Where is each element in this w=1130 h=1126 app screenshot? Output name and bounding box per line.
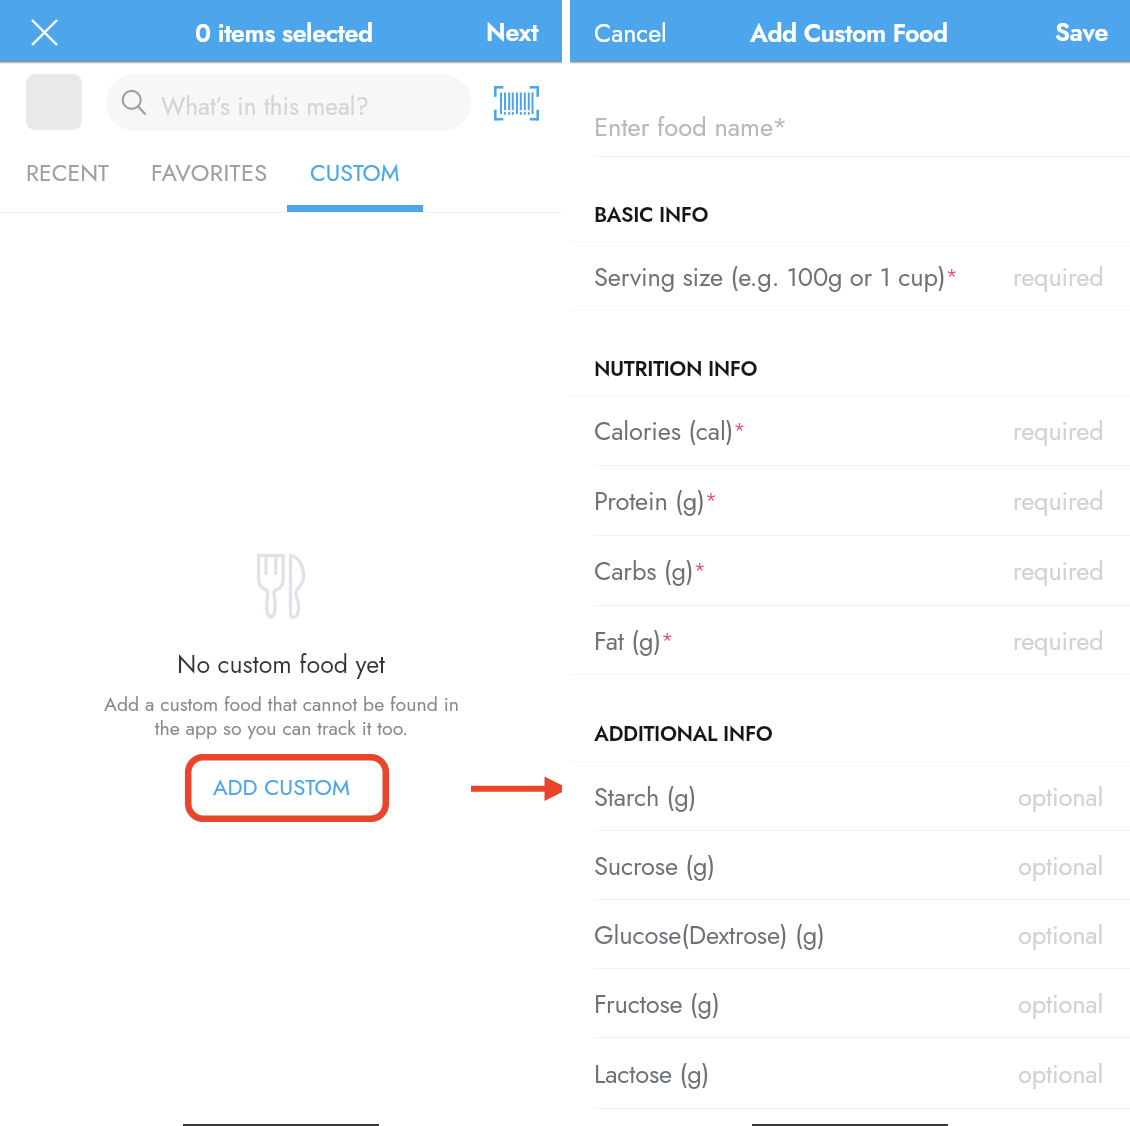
staticText: Lactose (g) — [594, 1056, 710, 1093]
staticText: No custom food yet — [177, 646, 386, 682]
staticText: Next — [486, 14, 539, 50]
staticText: Cancel — [594, 15, 667, 51]
button[interactable]: Protein (g)* — [570, 466, 1130, 535]
staticText: optional — [1018, 917, 1104, 954]
staticText: 0 items selected — [195, 15, 373, 51]
button[interactable]: RECENT — [3, 143, 132, 212]
staticText: Glucose(Dextrose) (g) — [594, 917, 825, 954]
button[interactable]: Enter food name* — [570, 61, 1130, 156]
button[interactable]: Cancel — [570, 5, 691, 59]
staticText: FAVORITES — [151, 156, 268, 190]
staticText: CUSTOM — [310, 156, 400, 189]
staticText: Protein (g)* — [594, 483, 718, 520]
button[interactable]: FAVORITES — [135, 143, 283, 212]
staticText: optional — [1018, 1056, 1104, 1093]
staticText: ADDITIONAL INFO — [594, 719, 773, 749]
button[interactable]: Fat (g)* — [570, 606, 1130, 674]
button[interactable]: Calories (cal)* — [570, 396, 1130, 465]
staticText: Carbs (g)* — [594, 553, 706, 590]
staticText: Add a custom food that cannot be found i… — [104, 690, 459, 742]
staticText: optional — [1018, 779, 1104, 816]
button[interactable]: Meal photo — [26, 74, 82, 130]
staticText: required — [1013, 483, 1104, 520]
staticText: required — [1013, 623, 1104, 660]
staticText: Add Custom Food — [750, 15, 948, 51]
button[interactable]: Fructose (g) — [570, 969, 1130, 1037]
staticText: ADD CUSTOM — [213, 771, 350, 803]
staticText: Fructose (g) — [594, 986, 720, 1023]
button[interactable]: ADD CUSTOM — [179, 754, 383, 822]
staticText: Sucrose (g) — [594, 848, 716, 885]
button[interactable]: CUSTOM — [287, 143, 422, 212]
button[interactable]: Starch (g) — [570, 762, 1130, 830]
staticText: RECENT — [26, 156, 109, 189]
button[interactable]: Serving size (e.g. 100g or 1 cup)* — [570, 242, 1130, 310]
button[interactable]: Lactose (g) — [570, 1038, 1130, 1108]
button[interactable]: Glucose(Dextrose) (g) — [570, 900, 1130, 968]
button[interactable]: Carbs (g)* — [570, 536, 1130, 605]
staticText: BASIC INFO — [594, 200, 709, 230]
staticText: optional — [1018, 848, 1104, 885]
button[interactable]: Save — [1030, 5, 1130, 59]
staticText: Serving size (e.g. 100g or 1 cup)* — [594, 259, 958, 296]
button[interactable]: Scan barcode — [489, 80, 545, 126]
button[interactable]: Close — [20, 8, 69, 57]
staticText: required — [1013, 553, 1104, 590]
staticText: Starch (g) — [594, 779, 697, 816]
staticText: required — [1013, 259, 1104, 296]
button[interactable]: Next — [463, 5, 562, 59]
staticText: What’s in this meal? — [161, 89, 370, 124]
staticText: NUTRITION INFO — [594, 354, 758, 384]
staticText: Save — [1055, 14, 1109, 50]
staticText: required — [1013, 413, 1104, 450]
button[interactable]: Sucrose (g) — [570, 831, 1130, 899]
button[interactable]: What’s in this meal? — [106, 74, 471, 131]
staticText: optional — [1018, 986, 1104, 1023]
staticText: Enter food name* — [594, 109, 788, 146]
staticText: Fat (g)* — [594, 623, 674, 660]
staticText: Calories (cal)* — [594, 413, 746, 450]
